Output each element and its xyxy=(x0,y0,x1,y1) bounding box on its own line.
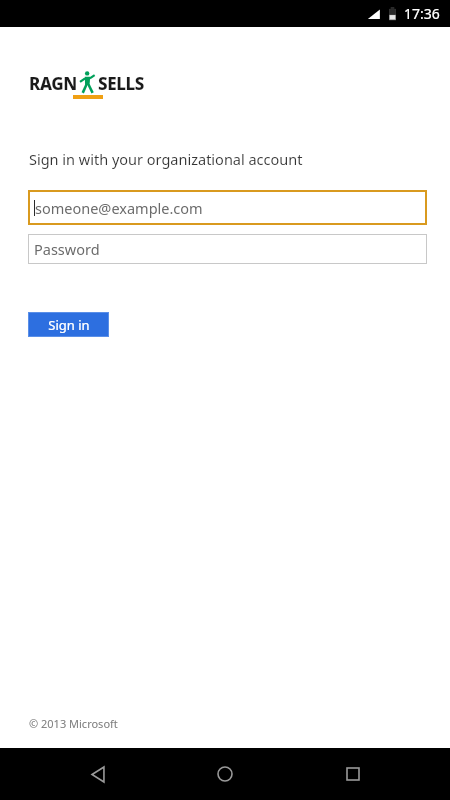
staticText: © 2013 Microsoft xyxy=(29,716,118,731)
staticText: Sign in xyxy=(48,316,90,334)
button[interactable]: someone@example.com xyxy=(28,190,427,225)
staticText: Password xyxy=(34,239,100,259)
button[interactable]: Back xyxy=(68,748,128,800)
button[interactable]: Sign in xyxy=(29,313,108,336)
staticText: RAGN xyxy=(29,72,77,95)
button[interactable]: Password xyxy=(28,234,427,264)
button[interactable]: Home xyxy=(195,748,255,800)
staticText: SELLS xyxy=(98,72,144,95)
button[interactable]: Recent apps xyxy=(323,748,383,800)
staticText: 17:36 xyxy=(404,4,440,23)
staticText: someone@example.com xyxy=(35,198,203,218)
staticText: Sign in with your organizational account xyxy=(29,149,303,169)
